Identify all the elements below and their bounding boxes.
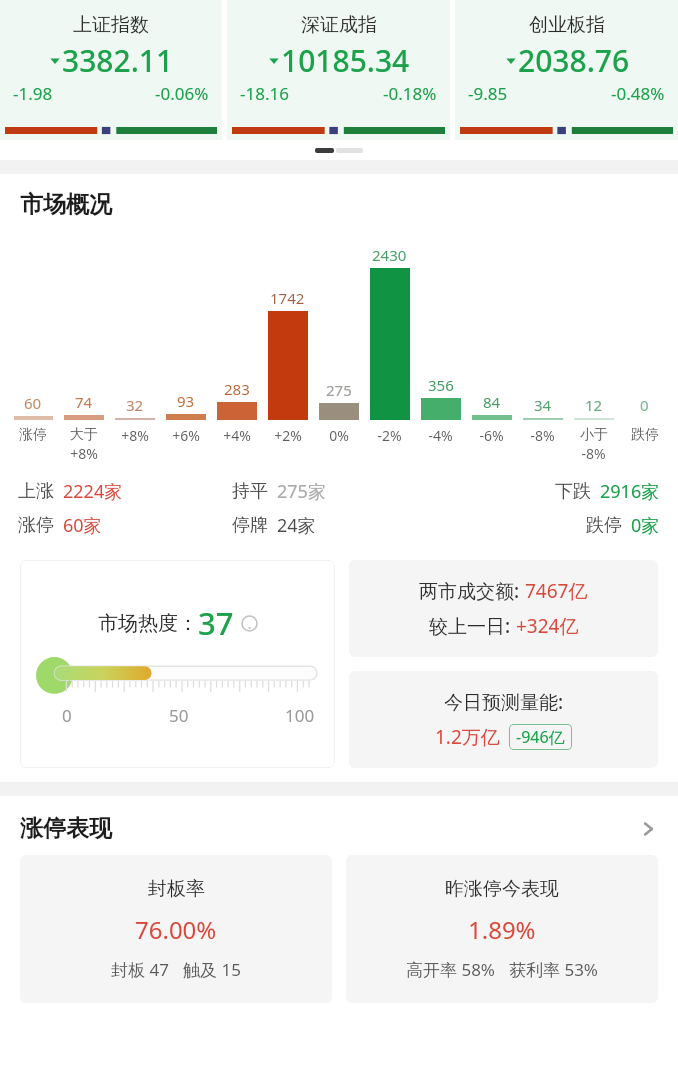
staticText: 大于 [70,426,98,444]
staticText: 封板 47 [111,958,169,981]
staticText: 50 [169,704,189,727]
staticText: 356 [428,375,454,395]
staticText: 34 [534,395,552,415]
button[interactable]: 今日预测量能: [349,671,658,768]
staticText: 7467亿 [525,578,588,604]
staticText: 涨停 [19,426,47,444]
staticText: 上证指数 [73,13,149,37]
staticText: -1.98 [13,82,53,105]
staticText: -9.85 [468,82,508,105]
staticText: -18.16 [240,82,289,105]
staticText: 1742 [270,288,305,308]
button[interactable]: 涨停 [18,513,102,538]
staticText: +6% [172,426,200,445]
staticText: -0.06% [155,82,209,105]
staticText: 74 [75,392,93,412]
staticText: -946亿 [516,726,565,748]
staticText: 创业板指 [529,13,605,37]
staticText: 触及 15 [183,958,241,981]
staticText: 12 [585,395,603,415]
staticText: -4% [428,426,453,445]
staticText: 涨停 [18,514,54,537]
staticText: 昨涨停今表现 [445,877,559,901]
staticText: 93 [177,391,195,411]
staticText: 60 [24,393,42,413]
staticText: 封板率 [148,877,205,901]
staticText: 3382.11 [62,40,174,81]
staticText: +4% [223,426,251,445]
button[interactable]: 涨停表现 [0,796,678,855]
staticText: 24家 [277,513,316,538]
staticText: -8% [530,426,555,445]
button[interactable]: 持平 [232,479,326,504]
staticText: 停牌 [232,514,268,537]
button[interactable]: 两市成交额: [349,560,658,657]
staticText: 84 [483,392,501,412]
staticText: 今日预测量能: [444,689,564,715]
staticText: 60家 [63,513,102,538]
staticText: 0 [640,395,649,415]
staticText: 市场概况 [20,190,112,219]
staticText: 小于 [580,426,608,444]
staticText: 275家 [277,479,326,504]
staticText: 0% [329,426,349,445]
button[interactable]: 停牌 [232,513,316,538]
staticText: -6% [479,426,504,445]
staticText: 2916家 [600,479,660,504]
staticText: -0.48% [611,82,665,105]
staticText: 两市成交额: [419,578,525,604]
button[interactable]: 跌停 [586,513,660,538]
staticText: +8% [121,426,149,445]
staticText: +324亿 [516,613,579,639]
button[interactable]: 昨涨停今表现 [346,855,658,1003]
staticText: 2038.76 [518,40,630,81]
staticText: -0.18% [383,82,437,105]
staticText: 深证成指 [301,13,377,37]
staticText: 0家 [631,513,660,538]
button[interactable]: 创业板指 [455,0,678,140]
staticText: 275 [326,380,352,400]
button[interactable]: 市场热度说明 [241,615,258,632]
staticText: +2% [274,426,302,445]
staticText: 1.2万亿 [435,724,500,750]
button[interactable]: 下跌 [555,479,660,504]
other: 查看涨停表现详情 [636,817,660,841]
staticText: 1.89% [468,913,536,946]
staticText: 涨停表现 [20,814,112,843]
button[interactable]: 上涨 [18,479,123,504]
staticText: 市场热度： [98,611,198,636]
staticText: 37 [198,602,234,644]
staticText: 100 [285,704,315,727]
button[interactable]: 上证指数 [0,0,222,140]
staticText: 10185.34 [281,40,410,81]
staticText: 32 [126,395,144,415]
staticText: 76.00% [135,913,217,946]
staticText: 跌停 [586,514,622,537]
staticText: 获利率 53% [509,958,598,981]
staticText: 持平 [232,480,268,503]
button[interactable]: 市场热度： [36,602,319,727]
staticText: 2430 [372,245,407,265]
staticText: 跌停 [631,426,659,444]
staticText: 283 [224,379,250,399]
button[interactable]: 深证成指 [227,0,450,140]
staticText: 较上一日: [429,613,516,639]
staticText: 高开率 58% [406,958,495,981]
staticText: +8% [70,444,98,463]
staticText: -2% [377,426,402,445]
button[interactable]: 封板率 [20,855,332,1003]
staticText: -8% [581,444,606,463]
staticText: 0 [62,704,72,727]
staticText: 2224家 [63,479,123,504]
staticText: 上涨 [18,480,54,503]
staticText: 下跌 [555,480,591,503]
